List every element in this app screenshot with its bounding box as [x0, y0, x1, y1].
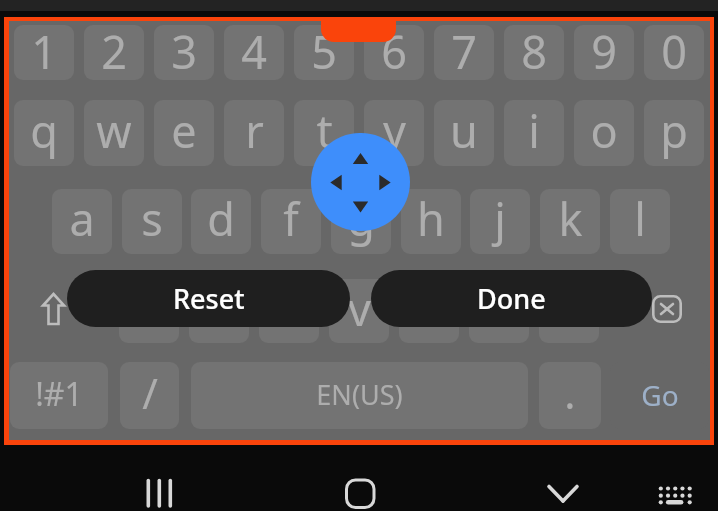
staticText: o	[590, 100, 618, 161]
button[interactable]: s	[122, 189, 182, 254]
button[interactable]: w	[84, 100, 144, 166]
button[interactable]: c	[259, 279, 319, 343]
staticText: a	[69, 189, 95, 249]
staticText: y	[383, 100, 406, 161]
button[interactable]: 2	[84, 25, 144, 80]
button[interactable]: e	[154, 100, 214, 166]
button[interactable]: 1	[14, 25, 74, 80]
button[interactable]: j	[470, 189, 530, 254]
button[interactable]: r	[224, 100, 284, 166]
staticText: q	[30, 100, 58, 161]
button[interactable]: l	[610, 189, 670, 254]
button[interactable]: Done	[371, 270, 652, 327]
button[interactable]: h	[401, 189, 461, 254]
staticText: p	[660, 100, 688, 161]
button[interactable]: Home	[340, 476, 380, 511]
staticText: d	[207, 189, 235, 249]
staticText: c	[278, 279, 300, 339]
button[interactable]: Hide keyboard	[543, 478, 583, 508]
button[interactable]: Resize handle	[321, 17, 396, 42]
staticText: i	[528, 100, 540, 161]
staticText: m	[548, 279, 591, 339]
button[interactable]: y	[364, 100, 424, 166]
staticText: !#1	[35, 372, 83, 416]
staticText: v	[348, 279, 371, 339]
staticText: b	[415, 279, 443, 339]
button[interactable]: o	[574, 100, 634, 166]
button[interactable]: Move keyboard	[311, 133, 410, 231]
button[interactable]: !#1	[10, 362, 108, 429]
staticText: t	[316, 100, 333, 161]
staticText: k	[558, 189, 583, 249]
button[interactable]: a	[52, 189, 112, 254]
button[interactable]: Keyboard	[652, 480, 698, 510]
staticText: w	[96, 100, 132, 161]
button[interactable]: 3	[154, 25, 214, 80]
button[interactable]: p	[644, 100, 704, 166]
staticText: 7	[451, 25, 477, 76]
button[interactable]: t	[294, 100, 354, 166]
staticText: 8	[521, 25, 547, 76]
button[interactable]: 6	[364, 25, 424, 80]
button[interactable]: 8	[504, 25, 564, 80]
button[interactable]: k	[540, 189, 600, 254]
button[interactable]: x	[189, 279, 249, 343]
button[interactable]: g	[331, 189, 391, 254]
button[interactable]: q	[14, 100, 74, 166]
staticText: 9	[591, 25, 617, 76]
staticText: Reset	[173, 280, 245, 317]
staticText: e	[171, 100, 197, 161]
button[interactable]: 7	[434, 25, 494, 80]
button[interactable]: /	[120, 362, 179, 429]
staticText: Done	[477, 280, 546, 317]
staticText: 4	[241, 25, 267, 76]
staticText: 6	[381, 25, 407, 76]
button[interactable]: Shift	[41, 292, 66, 326]
button[interactable]: Go	[610, 362, 709, 429]
staticText: Go	[641, 376, 679, 414]
staticText: s	[141, 189, 163, 249]
staticText: u	[450, 100, 478, 161]
staticText: 2	[101, 25, 127, 76]
button[interactable]: d	[191, 189, 251, 254]
button[interactable]: i	[504, 100, 564, 166]
staticText: l	[634, 189, 646, 249]
staticText: /	[142, 364, 158, 421]
staticText: f	[283, 189, 299, 249]
staticText: 0	[661, 25, 687, 76]
staticText: .	[564, 364, 576, 421]
staticText: g	[347, 189, 375, 249]
button[interactable]: v	[329, 279, 389, 343]
staticText: 1	[31, 25, 57, 76]
button[interactable]: z	[119, 279, 179, 343]
button[interactable]: 9	[574, 25, 634, 80]
button[interactable]: 5	[294, 25, 354, 80]
staticText: h	[417, 189, 445, 249]
staticText: x	[207, 279, 231, 339]
button[interactable]: EN(US)	[191, 362, 528, 429]
button[interactable]: Recent apps	[140, 478, 180, 508]
staticText: 5	[311, 25, 337, 76]
button[interactable]: m	[539, 279, 599, 343]
staticText: 3	[171, 25, 197, 76]
button[interactable]: f	[261, 189, 321, 254]
button[interactable]: 0	[644, 25, 704, 80]
staticText: z	[138, 279, 160, 339]
button[interactable]: b	[399, 279, 459, 343]
button[interactable]: n	[469, 279, 529, 343]
button[interactable]: u	[434, 100, 494, 166]
staticText: n	[485, 279, 513, 339]
button[interactable]: .	[539, 362, 601, 429]
button[interactable]: Backspace	[652, 295, 682, 323]
staticText: j	[494, 189, 506, 249]
button[interactable]: 4	[224, 25, 284, 80]
staticText: r	[245, 100, 264, 161]
button[interactable]: Reset	[67, 270, 350, 327]
staticText: EN(US)	[316, 376, 403, 413]
